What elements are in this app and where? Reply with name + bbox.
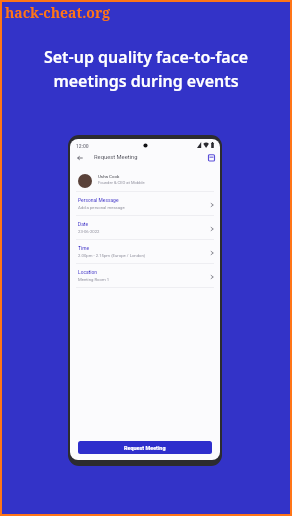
staticText: hack-cheat.org	[5, 3, 111, 22]
staticText: 23-06-2022	[78, 229, 100, 234]
button[interactable]: Usha Cook	[70, 170, 220, 191]
staticText: 2.00pm - 2.15pm (Europe / London)	[78, 253, 146, 258]
button[interactable]: Location	[70, 264, 220, 287]
staticText: Request Meeting	[94, 154, 138, 161]
button[interactable]: Date	[70, 216, 220, 239]
staticText: Location	[78, 269, 97, 275]
button[interactable]: Back	[74, 152, 85, 163]
staticText: Set-up quality face-to-face meetings dur…	[0, 46, 292, 92]
staticText: Date	[78, 221, 89, 227]
staticText: Request Meeting	[124, 445, 166, 451]
staticText: Add a personal message	[78, 205, 125, 210]
button[interactable]: Personal Message	[70, 192, 220, 215]
staticText: Time	[78, 245, 90, 251]
button[interactable]: Time	[70, 240, 220, 263]
staticText: 12:00	[76, 143, 89, 149]
staticText: Usha Cook	[98, 174, 120, 179]
staticText: Meeting Room 1	[78, 277, 110, 282]
button[interactable]: Request Meeting	[78, 441, 212, 454]
button[interactable]: Calendar	[206, 152, 217, 163]
staticText: Founder & CEO at Mobble	[98, 180, 145, 185]
staticText: Personal Message	[78, 197, 119, 203]
